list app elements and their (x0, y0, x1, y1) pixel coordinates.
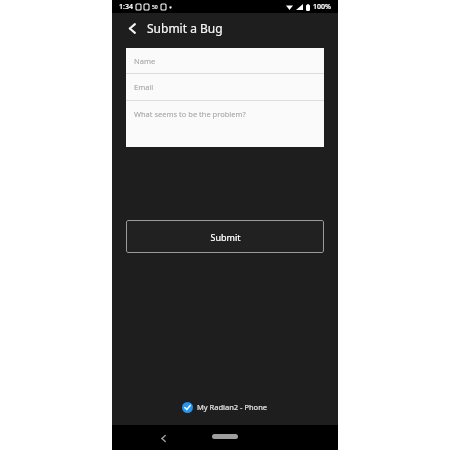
staticText: Submit (210, 231, 241, 243)
staticText: Email (134, 82, 154, 92)
button[interactable]: Back (154, 429, 172, 447)
staticText: Name (134, 56, 156, 66)
button[interactable]: What seems to be the problem? (126, 101, 324, 147)
button[interactable]: My Radian2 - Phone (112, 399, 338, 415)
staticText: My Radian2 - Phone (197, 402, 268, 412)
button[interactable]: Submit (126, 220, 324, 253)
button[interactable]: Email (126, 74, 324, 100)
staticText: 50 (152, 4, 158, 11)
button[interactable]: Back (121, 17, 143, 39)
button[interactable]: Home (210, 431, 240, 442)
staticText: Submit a Bug (147, 20, 223, 36)
staticText: What seems to be the problem? (134, 109, 246, 119)
button[interactable]: Name (126, 48, 324, 73)
staticText: 100% (313, 2, 331, 12)
staticText: 1:34 (119, 2, 133, 12)
